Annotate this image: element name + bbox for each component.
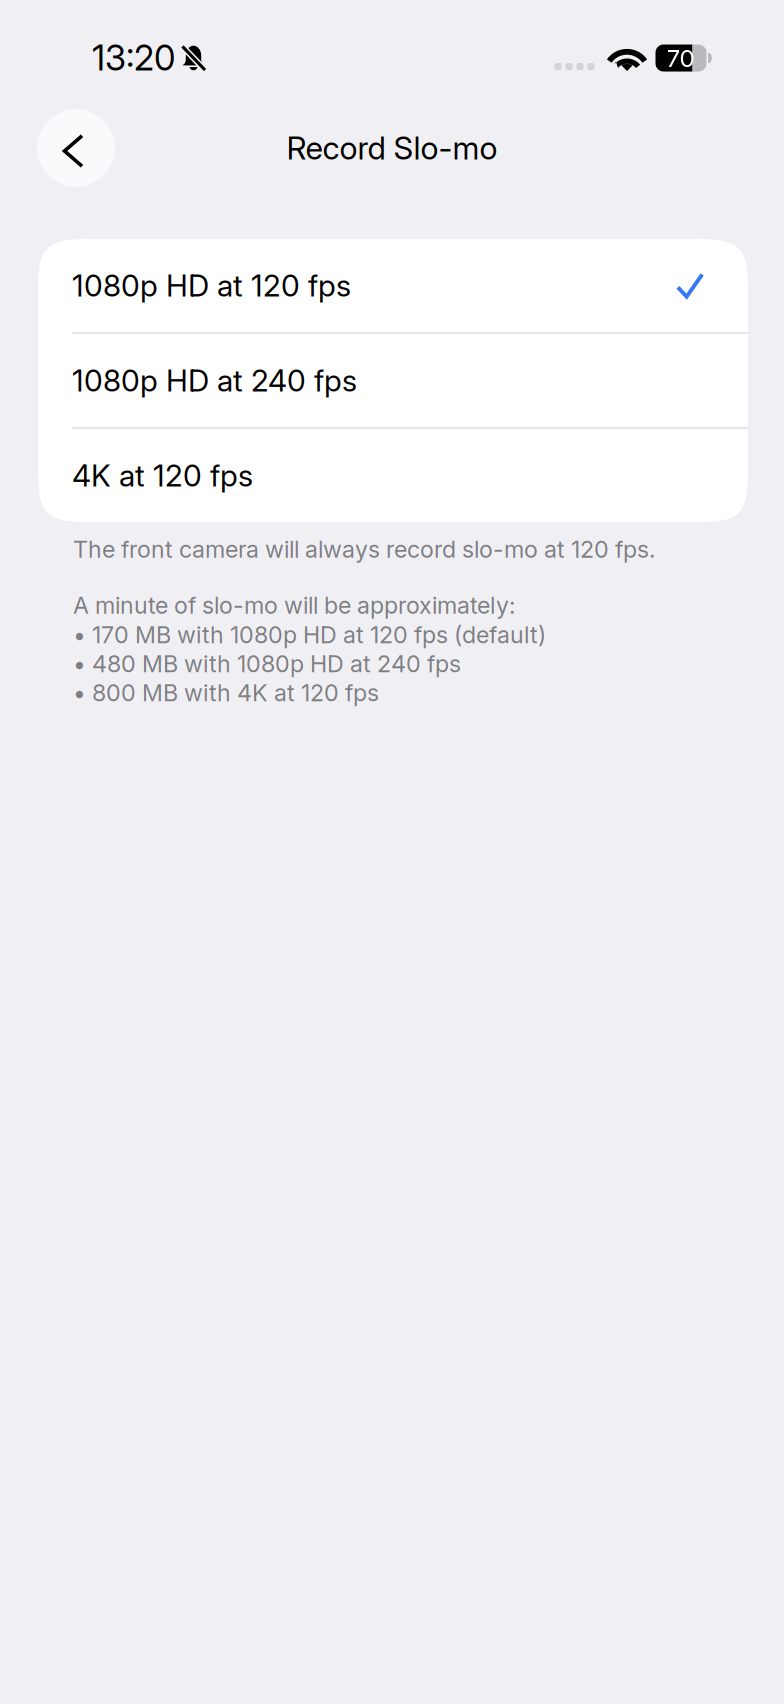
staticText: The front camera will always record slo-… (73, 535, 655, 563)
staticText: 1080p HD at 120 fps (72, 267, 351, 304)
button[interactable]: Back (37, 109, 115, 187)
staticText: A minute of slo-mo will be approximately… (73, 591, 515, 619)
staticText: • 800 MB with 4K at 120 fps (73, 679, 379, 707)
staticText: • 170 MB with 1080p HD at 120 fps (defau… (73, 621, 546, 649)
staticText: 4K at 120 fps (72, 457, 253, 494)
staticText: • 480 MB with 1080p HD at 240 fps (73, 650, 461, 678)
button[interactable]: 1080p HD at 120 fps (38, 239, 748, 332)
staticText: 13:20 (92, 37, 175, 79)
staticText: 1080p HD at 240 fps (72, 362, 357, 399)
staticText: 70 (666, 43, 694, 73)
staticText: Record Slo-mo (286, 129, 497, 167)
button[interactable]: 4K at 120 fps (38, 429, 748, 522)
button[interactable]: 1080p HD at 240 fps (38, 334, 748, 427)
